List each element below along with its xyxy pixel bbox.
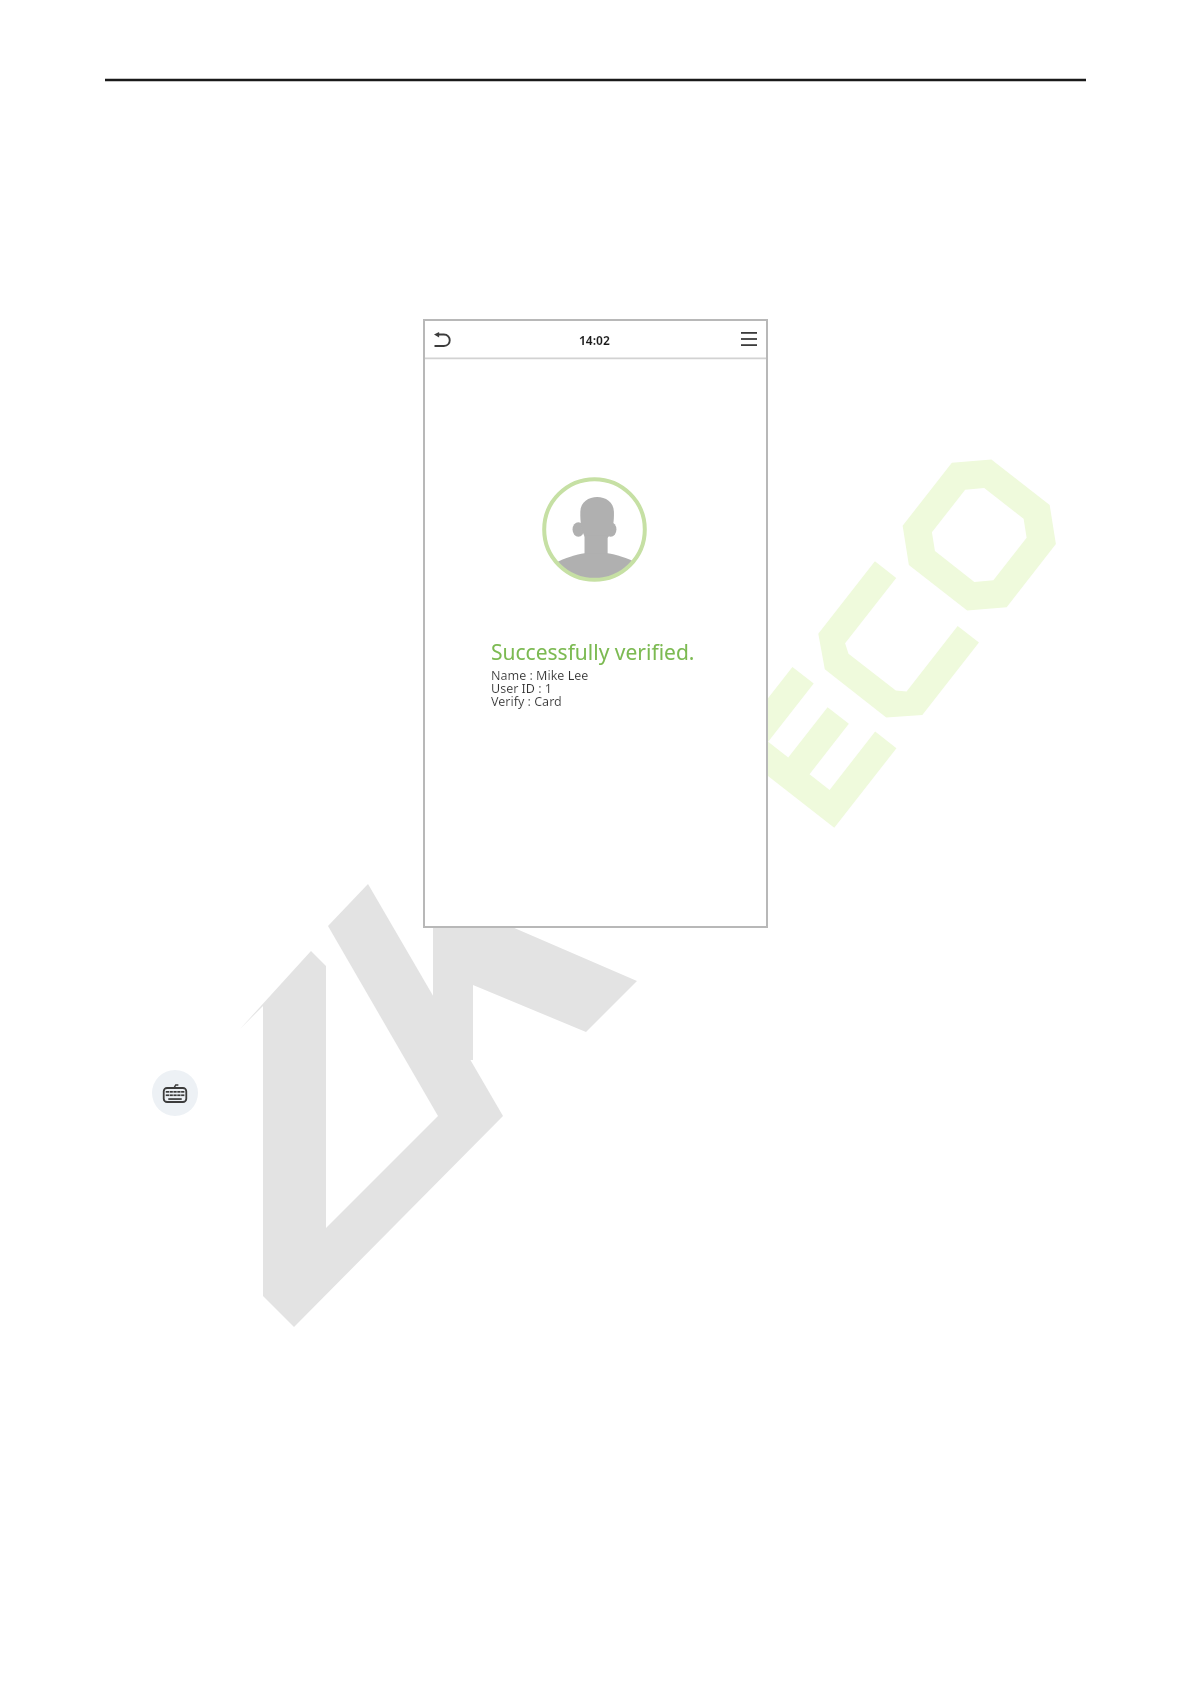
staticText: 14:02	[579, 332, 610, 348]
staticText: Verify : Card	[491, 693, 562, 710]
button[interactable]: Menu	[731, 320, 767, 358]
staticText: User ID : 1	[491, 680, 552, 697]
staticText: Successfully verified.	[491, 638, 695, 667]
button[interactable]: Back	[424, 320, 460, 358]
button[interactable]: Keyboard	[152, 1070, 198, 1116]
staticText: Name : Mike Lee	[491, 667, 589, 684]
